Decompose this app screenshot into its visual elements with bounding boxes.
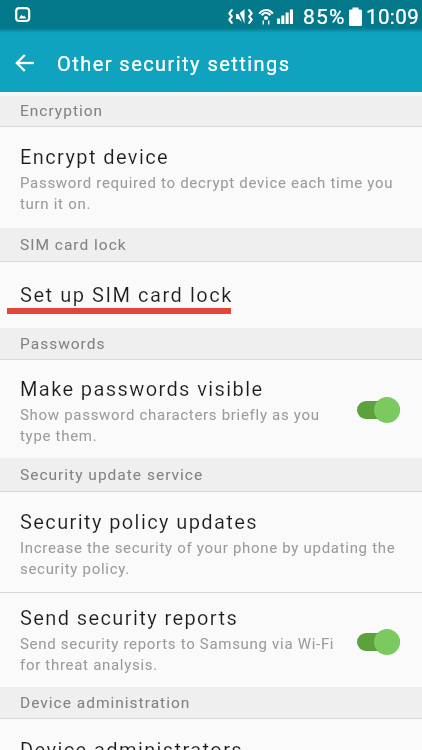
staticText: Send security reports to Samsung via Wi-… — [20, 635, 335, 674]
staticText: Set up SIM card lock — [20, 283, 233, 306]
staticText: Other security settings — [57, 52, 291, 75]
staticText: Device administrators — [20, 738, 244, 750]
button[interactable]: Security policy updates — [0, 492, 422, 592]
button[interactable]: Send security reports — [0, 593, 422, 687]
button[interactable]: Make passwords visible — [0, 360, 422, 458]
staticText: Show password characters briefly as you … — [20, 406, 320, 445]
staticText: 10:09 — [366, 5, 420, 29]
staticText: Increase the security of your phone by u… — [20, 539, 396, 578]
button[interactable] — [0, 39, 48, 87]
staticText: 85% — [303, 5, 346, 30]
staticText: SIM card lock — [20, 236, 127, 254]
staticText: Send security reports — [20, 606, 239, 629]
button[interactable]: Set up SIM card lock — [0, 262, 422, 328]
staticText: Encryption — [20, 102, 104, 120]
staticText: Security update service — [20, 466, 204, 484]
staticText: Encrypt device — [20, 145, 170, 168]
button[interactable]: Device administrators — [0, 719, 422, 750]
staticText: Security policy updates — [20, 510, 258, 533]
staticText: Make passwords visible — [20, 377, 264, 400]
staticText: Password required to decrypt device each… — [20, 174, 394, 213]
staticText: Device administration — [20, 694, 191, 712]
staticText: Passwords — [20, 335, 106, 353]
button[interactable]: Encrypt device — [0, 127, 422, 228]
